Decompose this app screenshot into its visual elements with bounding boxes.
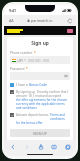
- staticText: Phone number: [10, 51, 33, 55]
- staticText: parimatch.in: [31, 18, 53, 23]
- button[interactable]: By signing up, I hereby confirm that I a…: [10, 90, 70, 110]
- button[interactable]: Forward: [22, 142, 31, 151]
- button[interactable]: I have a: [10, 83, 70, 87]
- staticText: +91: [17, 58, 23, 63]
- button[interactable]: Back: [8, 142, 17, 151]
- button[interactable]: SIGN UP: [10, 129, 70, 137]
- button[interactable]: Bookmarks: [49, 142, 58, 151]
- staticText: SIGN UP: [33, 131, 47, 136]
- button[interactable]: Activate deposit bonus.: [10, 113, 70, 125]
- staticText: By signing up, I hereby confirm that I a…: [16, 90, 70, 98]
- staticText: *: [34, 51, 36, 55]
- staticText: for the bonus offer: [16, 121, 43, 125]
- staticText: Terms and conditions: [50, 113, 70, 121]
- button[interactable]: +91: [10, 56, 70, 64]
- staticText: Bonus Code: [29, 83, 47, 87]
- other: Show password: [64, 74, 68, 78]
- staticText: 000 000 - 000: [28, 58, 50, 63]
- button[interactable]: Language: [67, 29, 73, 33]
- staticText: Sign up: [10, 40, 70, 47]
- button[interactable]: Tabs: [63, 142, 72, 151]
- staticText: the offer agreements for the chosen curr…: [16, 98, 70, 110]
- staticText: *: [26, 67, 28, 71]
- staticText: AA: [9, 18, 14, 23]
- staticText: Activate deposit bonus.: [16, 113, 50, 117]
- staticText: Password: [10, 67, 25, 71]
- button[interactable]: Share: [36, 142, 45, 151]
- button[interactable]: Show password: [10, 72, 70, 80]
- staticText: I have a: [16, 83, 29, 87]
- button[interactable]: Reload: [68, 19, 72, 23]
- staticText: 9:41: [9, 8, 16, 13]
